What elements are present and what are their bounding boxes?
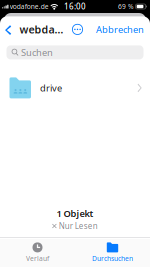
button[interactable]: drive [0, 73, 150, 103]
button[interactable]: Abbrechen [92, 16, 148, 42]
staticText: Suchen [21, 46, 53, 59]
staticText: drive [40, 82, 62, 94]
staticText: 69 % [118, 2, 134, 11]
staticText: 16:00 [64, 1, 86, 12]
staticText: vodafone.de [10, 2, 49, 11]
staticText: webda… [19, 22, 63, 36]
staticText: Nur Lesen [59, 221, 98, 231]
button[interactable]: More options [63, 16, 87, 42]
staticText: Verlauf [26, 254, 49, 263]
staticText: Abbrechen [96, 23, 144, 36]
staticText: Durchsuchen [92, 254, 133, 263]
staticText: 1 Objekt [56, 207, 93, 220]
button[interactable]: Verlauf [0, 238, 75, 267]
button[interactable]: Back [2, 16, 19, 42]
button[interactable]: Durchsuchen [75, 238, 150, 267]
